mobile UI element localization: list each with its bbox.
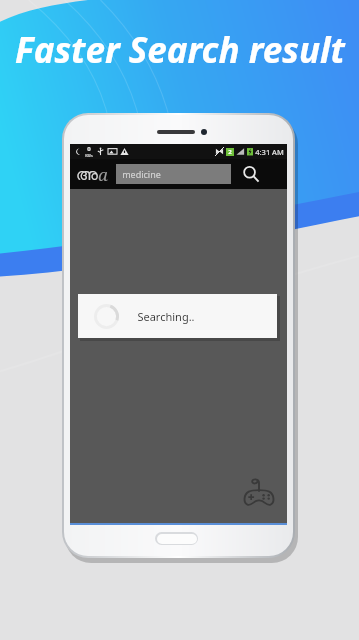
staticText: medicine	[122, 168, 161, 180]
button[interactable]: Search	[238, 161, 264, 187]
staticText: Searching..	[137, 309, 195, 324]
button[interactable]: medicine	[116, 164, 231, 184]
button[interactable]: Games	[239, 471, 279, 511]
staticText: 0	[87, 145, 91, 153]
staticText: Faster Search result	[15, 26, 345, 74]
staticText: 4:31 AM	[255, 147, 284, 157]
button[interactable]: Searching..	[78, 294, 277, 338]
button[interactable]: Home	[155, 532, 198, 545]
staticText: a	[98, 163, 108, 186]
staticText: KB/s	[85, 153, 93, 158]
staticText: അ	[76, 167, 98, 183]
staticText: 2	[228, 148, 232, 156]
